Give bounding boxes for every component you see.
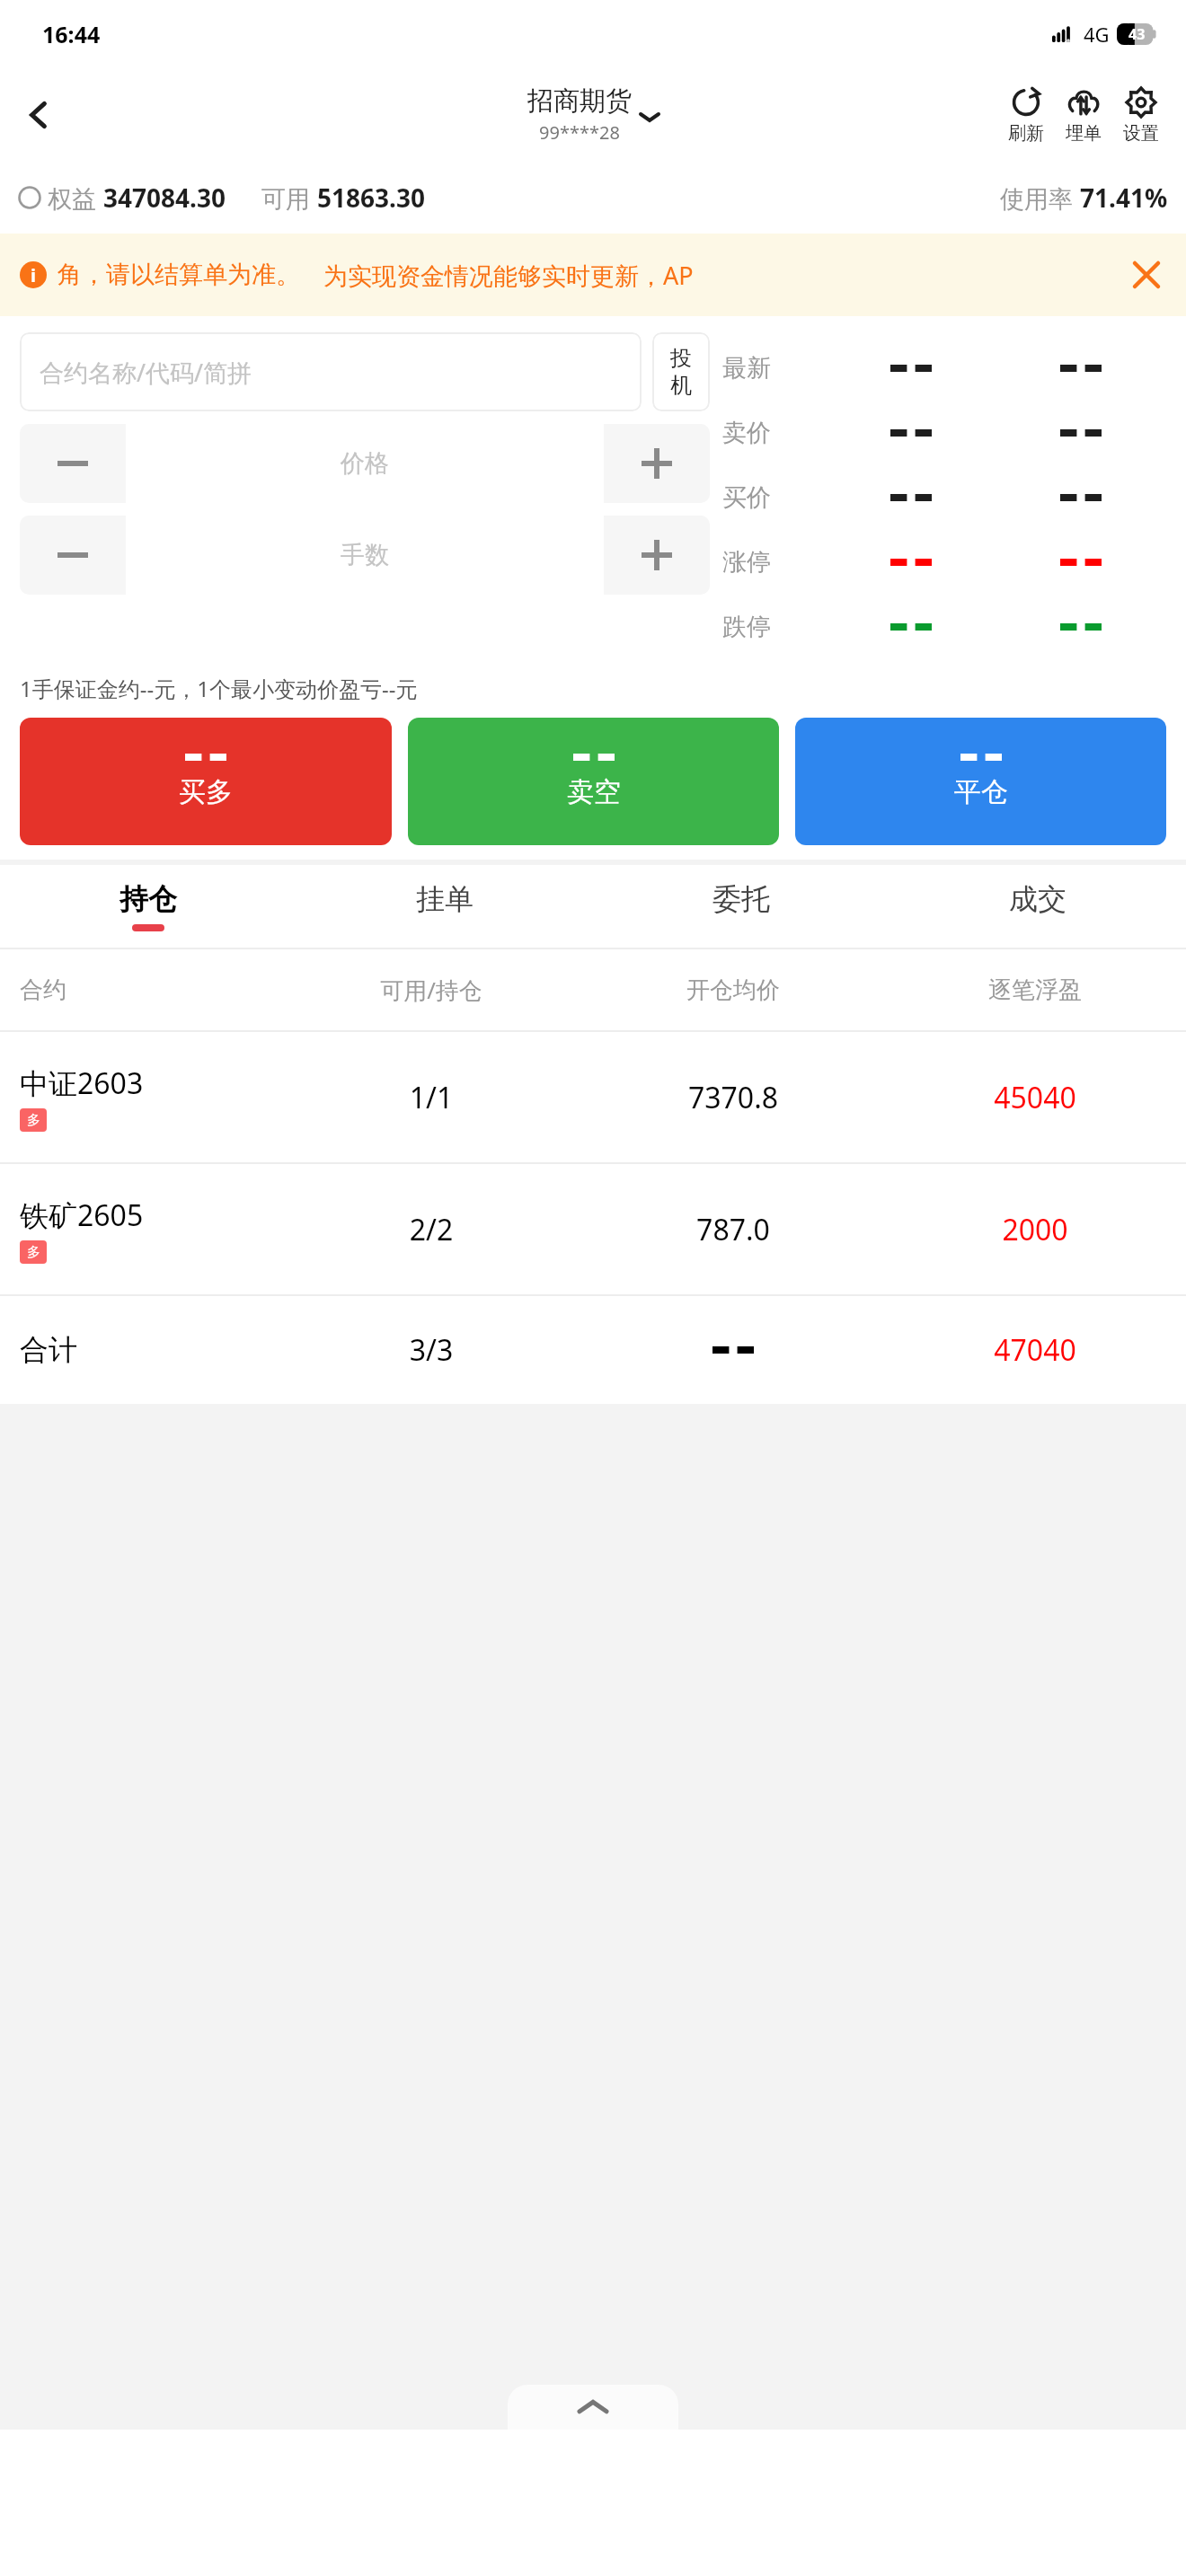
button[interactable]: Increase — [604, 516, 710, 595]
button[interactable]: Decrease — [20, 424, 126, 503]
staticText: 43 — [1128, 24, 1146, 44]
button[interactable]: 委托 — [593, 865, 889, 948]
button[interactable]: 卖空 — [408, 718, 779, 845]
staticText: 最新 — [722, 353, 826, 384]
staticText: 多 — [27, 1244, 40, 1261]
staticText: 挂单 — [416, 881, 474, 917]
staticText: 多 — [27, 1112, 40, 1129]
button[interactable]: 价格 — [126, 424, 604, 503]
staticText: 4G — [1084, 21, 1110, 48]
staticText: 2/2 — [280, 1210, 582, 1249]
staticText: 合计 — [20, 1332, 280, 1368]
button[interactable]: 买多 — [20, 718, 392, 845]
staticText: 45040 — [884, 1078, 1186, 1117]
button[interactable]: Increase — [604, 424, 710, 503]
button[interactable]: 合约名称/代码/简拼 — [20, 332, 642, 411]
staticText: 99****28 — [539, 120, 620, 145]
button[interactable]: 平仓 — [795, 718, 1166, 845]
staticText: 3/3 — [280, 1330, 582, 1370]
staticText: 委托 — [712, 881, 770, 917]
button[interactable]: 刷新 — [997, 84, 1055, 145]
button[interactable]: Expand — [508, 2385, 678, 2430]
staticText: 2000 — [884, 1210, 1186, 1249]
button[interactable]: 设置 — [1112, 84, 1170, 145]
staticText: 开仓均价 — [582, 975, 884, 1005]
staticText: 1手保证金约--元，1个最小变动价盈亏--元 — [20, 674, 418, 703]
staticText: 涨停 — [722, 547, 826, 578]
staticText: 可用/持仓 — [280, 974, 582, 1006]
staticText: 16:44 — [42, 19, 101, 49]
staticText: 买价 — [722, 482, 826, 513]
staticText: 中证2603 — [20, 1063, 144, 1103]
staticText: 47040 — [884, 1330, 1186, 1370]
staticText: 可用 — [261, 181, 317, 215]
staticText: 347084.30 — [103, 181, 226, 215]
staticText: 卖价 — [722, 418, 826, 448]
staticText: 合约 — [20, 975, 280, 1005]
staticText: 成交 — [1009, 881, 1067, 917]
button[interactable]: Decrease — [20, 516, 126, 595]
staticText: 角，请以结算单为准。 — [58, 260, 300, 290]
staticText: 价格 — [341, 448, 389, 479]
button[interactable]: 埋单 — [1055, 84, 1112, 145]
button[interactable]: 铁矿2605 — [0, 1164, 1186, 1294]
staticText: 787.0 — [582, 1210, 884, 1249]
staticText: 平仓 — [954, 775, 1008, 809]
button[interactable]: 手数 — [126, 516, 604, 595]
staticText: 1/1 — [280, 1078, 582, 1117]
staticText: i — [31, 263, 36, 287]
button[interactable]: 中证2603 — [0, 1032, 1186, 1162]
button[interactable]: 持仓 — [0, 865, 296, 948]
staticText: 权益 — [48, 181, 103, 215]
button[interactable]: 成交 — [889, 865, 1186, 948]
staticText: 卖空 — [567, 775, 621, 809]
button[interactable]: Back — [13, 88, 66, 142]
staticText: 刷新 — [1008, 122, 1044, 145]
button[interactable]: 挂单 — [296, 865, 593, 948]
staticText: 投 — [670, 345, 692, 372]
staticText: 机 — [670, 372, 692, 399]
staticText: 7370.8 — [582, 1078, 884, 1117]
staticText: 持仓 — [119, 881, 177, 917]
staticText: 跌停 — [722, 612, 826, 642]
staticText: 铁矿2605 — [20, 1195, 144, 1235]
staticText: 为实现资金情况能够实时更新，AP — [323, 259, 1127, 292]
button[interactable]: Close — [1127, 255, 1166, 295]
staticText: 设置 — [1123, 122, 1159, 145]
staticText: 手数 — [341, 540, 389, 570]
staticText: 逐笔浮盈 — [884, 975, 1186, 1005]
staticText: 使用率 — [1000, 181, 1080, 215]
staticText: 合约名称/代码/简拼 — [40, 356, 252, 389]
button[interactable]: 投 — [652, 332, 710, 411]
staticText: 招商期货 — [527, 84, 632, 118]
staticText: 买多 — [179, 775, 233, 809]
staticText: 埋单 — [1066, 122, 1102, 145]
staticText: 51863.30 — [317, 181, 425, 215]
staticText: 71.41% — [1080, 181, 1168, 215]
